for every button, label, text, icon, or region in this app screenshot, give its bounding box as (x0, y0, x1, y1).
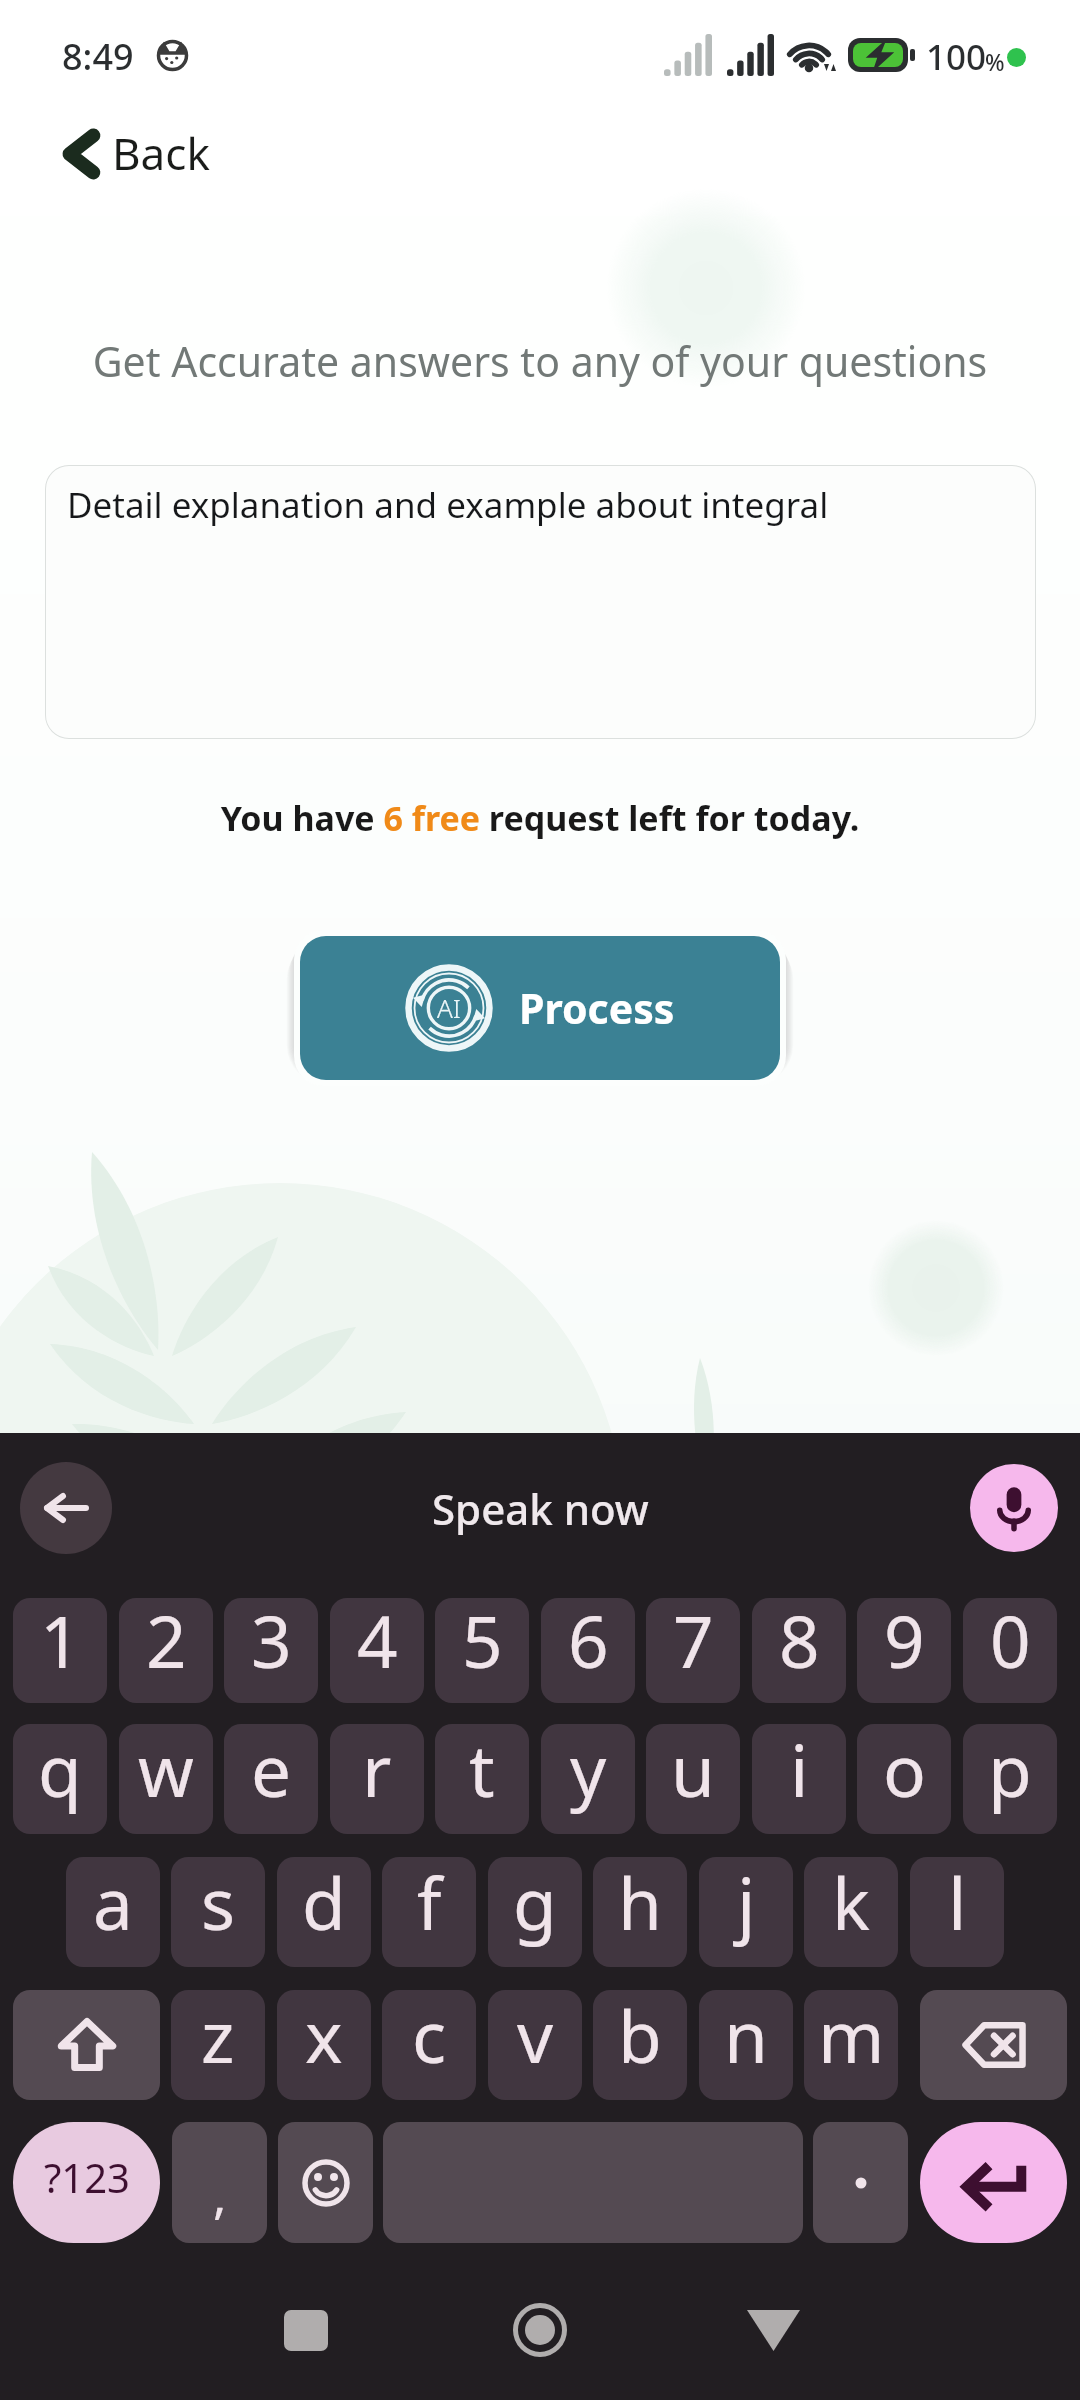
staticText: Back (112, 123, 210, 183)
button[interactable]: ?123 (13, 2122, 160, 2243)
button[interactable]: Hide keyboard (697, 2272, 849, 2400)
staticText: ?123 (44, 2150, 130, 2204)
button[interactable]: Period (813, 2122, 908, 2243)
staticText: k (832, 1857, 870, 1951)
button[interactable]: c (382, 1990, 476, 2100)
button[interactable]: Emoji (278, 2122, 373, 2243)
staticText: 100 (926, 33, 987, 81)
staticText: i (790, 1724, 809, 1818)
staticText: j (737, 1857, 756, 1951)
button[interactable]: 1 (13, 1598, 107, 1703)
button[interactable]: Home (464, 2272, 616, 2400)
button[interactable]: AI (300, 936, 780, 1080)
staticText: a (93, 1857, 133, 1951)
staticText: g (513, 1857, 557, 1951)
staticText: m (818, 1990, 885, 2084)
staticText: % (985, 46, 1005, 77)
button[interactable]: k (804, 1857, 898, 1967)
button[interactable]: 3 (224, 1598, 318, 1703)
button[interactable]: l (910, 1857, 1004, 1967)
button[interactable]: r (330, 1724, 424, 1834)
button[interactable]: j (699, 1857, 793, 1967)
button[interactable]: Backspace (920, 1990, 1067, 2100)
button[interactable]: 2 (119, 1598, 213, 1703)
button[interactable]: e (224, 1724, 318, 1834)
button[interactable]: x (277, 1990, 371, 2100)
staticText: Process (519, 980, 675, 1036)
button[interactable]: 8 (752, 1598, 846, 1703)
button[interactable]: 7 (646, 1598, 740, 1703)
button[interactable]: Shift (13, 1990, 160, 2100)
staticText: 4 (357, 1598, 398, 1689)
staticText: l (948, 1857, 967, 1951)
button[interactable]: w (119, 1724, 213, 1834)
button[interactable]: v (488, 1990, 582, 2100)
button[interactable]: o (857, 1724, 951, 1834)
staticText: q (38, 1724, 82, 1818)
button[interactable]: 0 (963, 1598, 1057, 1703)
staticText: w (138, 1724, 194, 1818)
staticText: t (469, 1724, 495, 1818)
button[interactable]: q (13, 1724, 107, 1834)
staticText: h (618, 1857, 662, 1951)
staticText: u (671, 1724, 715, 1818)
button[interactable]: n (699, 1990, 793, 2100)
button[interactable]: t (435, 1724, 529, 1834)
staticText: You have 6 free request left for today. (0, 795, 1080, 841)
button[interactable]: i (752, 1724, 846, 1834)
button[interactable]: Microphone (970, 1464, 1058, 1552)
staticText: p (988, 1724, 1032, 1818)
button[interactable]: , (172, 2122, 267, 2243)
button[interactable]: 4 (330, 1598, 424, 1703)
button[interactable]: b (593, 1990, 687, 2100)
button[interactable]: Space (383, 2122, 803, 2243)
staticText: 8 (779, 1598, 820, 1689)
staticText: 6 (568, 1598, 609, 1689)
staticText: s (201, 1857, 236, 1951)
staticText: 2 (146, 1598, 187, 1689)
staticText: f (417, 1857, 442, 1951)
button[interactable]: h (593, 1857, 687, 1967)
button[interactable]: Detail explanation and example about int… (45, 465, 1036, 739)
button[interactable]: 6 (541, 1598, 635, 1703)
staticText: 5 (462, 1598, 503, 1689)
staticText: b (618, 1990, 662, 2084)
staticText: Speak now (432, 1480, 649, 1537)
button[interactable]: m (804, 1990, 898, 2100)
staticText: AI (437, 990, 461, 1025)
staticText: 3 (251, 1598, 292, 1689)
button[interactable]: z (171, 1990, 265, 2100)
button[interactable]: d (277, 1857, 371, 1967)
staticText: o (883, 1724, 926, 1818)
staticText: z (201, 1990, 235, 2084)
button[interactable]: Back (20, 1462, 112, 1554)
staticText: c (412, 1990, 447, 2084)
button[interactable]: Back (0, 100, 1080, 208)
button[interactable]: a (66, 1857, 160, 1967)
staticText: r (362, 1724, 392, 1818)
staticText: n (724, 1990, 768, 2084)
staticText: x (305, 1990, 343, 2084)
other: Back (59, 132, 103, 176)
staticText: 0 (990, 1598, 1031, 1689)
staticText: 8:49 (62, 32, 134, 81)
button[interactable]: 9 (857, 1598, 951, 1703)
button[interactable]: p (963, 1724, 1057, 1834)
button[interactable]: u (646, 1724, 740, 1834)
button[interactable]: s (171, 1857, 265, 1967)
button[interactable]: 5 (435, 1598, 529, 1703)
staticText: 7 (673, 1598, 714, 1689)
staticText: d (302, 1857, 346, 1951)
button[interactable]: Enter (920, 2122, 1067, 2243)
staticText: Detail explanation and example about int… (67, 481, 829, 529)
staticText: , (213, 2161, 227, 2229)
button[interactable]: g (488, 1857, 582, 1967)
button[interactable]: y (541, 1724, 635, 1834)
staticText: e (251, 1724, 292, 1818)
button[interactable]: f (382, 1857, 476, 1967)
staticText: y (570, 1724, 607, 1818)
staticText: v (517, 1990, 554, 2084)
staticText: Get Accurate answers to any of your ques… (0, 333, 1080, 389)
staticText: 9 (884, 1598, 925, 1689)
button[interactable]: Recents (230, 2272, 382, 2400)
